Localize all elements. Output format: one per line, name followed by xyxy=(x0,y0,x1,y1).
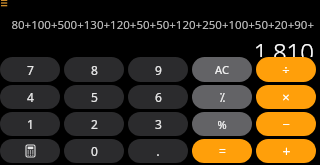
button[interactable]: AC xyxy=(192,57,252,82)
staticText: ÷ xyxy=(282,61,290,79)
staticText: 8 xyxy=(91,62,98,78)
staticText: ⁒ xyxy=(220,89,225,105)
button[interactable]: 1 xyxy=(0,112,60,136)
button[interactable]: + xyxy=(256,139,316,163)
staticText: − xyxy=(282,115,290,133)
staticText: 4 xyxy=(27,89,34,105)
staticText: 5 xyxy=(91,89,98,105)
staticText: AC xyxy=(215,62,229,77)
staticText: . xyxy=(156,142,160,160)
staticText: 1 xyxy=(27,116,34,132)
button[interactable]: 9 xyxy=(128,57,188,82)
staticText: 6 xyxy=(155,89,162,105)
button[interactable]: % xyxy=(192,112,252,136)
staticText: 2 xyxy=(91,116,98,132)
staticText: 9 xyxy=(155,62,162,78)
staticText: 0 xyxy=(91,143,98,159)
button[interactable]: = xyxy=(192,139,252,163)
button[interactable]: 2 xyxy=(64,112,124,136)
button[interactable]: 7 xyxy=(0,57,60,82)
staticText: 80+100+500+130+120+50+50+120+250+100+50+… xyxy=(6,17,314,33)
staticText: % xyxy=(217,117,227,132)
button[interactable]: 5 xyxy=(64,85,124,109)
staticText: = xyxy=(219,143,226,159)
button[interactable]: × xyxy=(256,85,316,109)
button[interactable]: − xyxy=(256,112,316,136)
staticText: + xyxy=(282,142,291,161)
staticText: × xyxy=(282,88,290,106)
staticText: 1,810 xyxy=(253,35,314,57)
button[interactable]: . xyxy=(128,139,188,163)
button[interactable]: Calculator xyxy=(0,139,60,163)
button[interactable]: History xyxy=(1,0,9,9)
button[interactable]: 4 xyxy=(0,85,60,109)
staticText: 3 xyxy=(155,116,162,132)
button[interactable]: 0 xyxy=(64,139,124,163)
button[interactable]: ⁒ xyxy=(192,85,252,109)
button[interactable]: 3 xyxy=(128,112,188,136)
button[interactable]: 8 xyxy=(64,57,124,82)
staticText: 7 xyxy=(27,62,34,78)
button[interactable]: 6 xyxy=(128,85,188,109)
button[interactable]: ÷ xyxy=(256,57,316,82)
